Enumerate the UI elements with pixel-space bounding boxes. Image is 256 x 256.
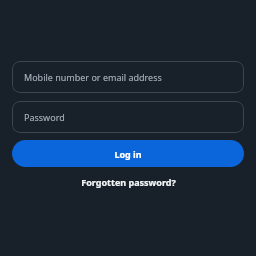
button[interactable]: Log in: [12, 140, 244, 167]
staticText: Password: [24, 111, 65, 123]
button[interactable]: Password: [12, 101, 244, 133]
staticText: Forgotten password?: [81, 176, 176, 188]
staticText: Log in: [114, 148, 142, 160]
button[interactable]: Forgotten password?: [12, 174, 244, 190]
staticText: Mobile number or email address: [24, 71, 162, 83]
button[interactable]: Mobile number or email address: [12, 61, 244, 93]
